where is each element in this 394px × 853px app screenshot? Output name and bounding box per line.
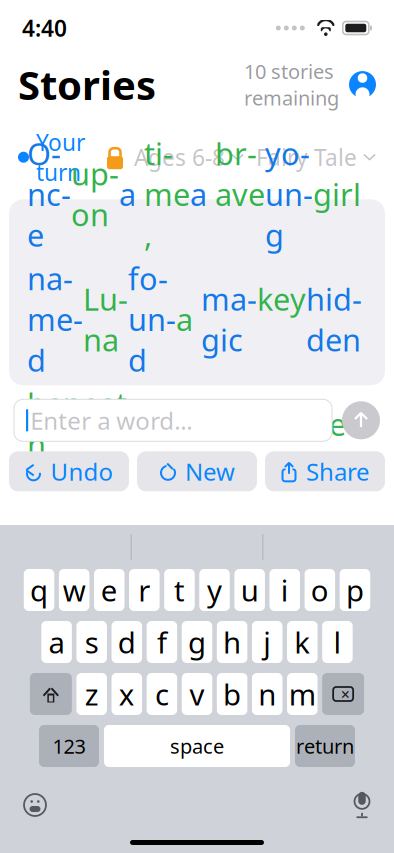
staticText: j [263, 622, 271, 661]
button[interactable]: q [24, 569, 54, 611]
staticText: p [346, 570, 364, 609]
button[interactable]: k [287, 621, 318, 663]
button[interactable]: a [41, 621, 72, 663]
staticText: r [138, 570, 150, 609]
staticText: a [190, 174, 215, 214]
button[interactable]: o [305, 569, 335, 611]
button[interactable]: w [59, 569, 89, 611]
button[interactable]: c [147, 673, 177, 715]
staticText: f [157, 622, 167, 661]
staticText: z [85, 674, 99, 713]
button[interactable]: l [322, 621, 353, 663]
staticText: girl [313, 174, 361, 214]
button[interactable]: Dictate [344, 783, 380, 827]
button[interactable]: Fairy Tale [256, 142, 376, 172]
staticText: g [188, 622, 206, 661]
staticText: i [281, 570, 289, 609]
staticText: d [118, 622, 136, 661]
button[interactable]: f [147, 621, 177, 663]
staticText: brave [215, 133, 265, 255]
button[interactable]: Ages 6-8 [134, 142, 244, 172]
staticText: the [137, 404, 192, 444]
staticText: Enter a word... [30, 404, 192, 436]
staticText: hidden [306, 278, 362, 360]
staticText: t [174, 570, 185, 609]
button[interactable]: Delete [322, 673, 364, 715]
staticText: space [170, 733, 224, 759]
staticText: oak [246, 404, 306, 444]
button[interactable]: m [287, 673, 318, 715]
staticText: tree [306, 404, 363, 444]
staticText: k [294, 622, 310, 661]
staticText: n [258, 674, 276, 713]
button[interactable]: x [112, 673, 142, 715]
staticText: Stories [18, 58, 156, 111]
staticText: Luna [83, 278, 128, 360]
staticText: Fairy Tale [256, 142, 357, 172]
staticText: magic [201, 278, 257, 360]
staticText: Your turn [36, 127, 85, 187]
staticText: key [257, 278, 306, 360]
staticText: time, [144, 133, 190, 255]
button[interactable]: New [137, 451, 257, 491]
button[interactable]: Shift [30, 673, 72, 715]
button[interactable]: return [295, 725, 355, 767]
button[interactable]: Send [342, 401, 380, 439]
button[interactable]: Account [349, 71, 376, 98]
staticText: y [207, 570, 222, 609]
staticText: × [341, 683, 350, 705]
staticText: a [49, 622, 65, 661]
button[interactable]: Undo [9, 451, 129, 491]
button[interactable]: i [269, 569, 300, 611]
button[interactable]: g [182, 621, 212, 663]
staticText: found [128, 258, 176, 380]
button[interactable]: t [164, 569, 195, 611]
staticText: m [289, 674, 316, 713]
staticText: a [176, 299, 201, 339]
staticText: v [189, 674, 204, 713]
staticText: named [27, 258, 83, 380]
staticText: 123 [52, 733, 85, 759]
staticText: q [30, 570, 48, 609]
staticText: s [85, 622, 99, 661]
button[interactable]: v [182, 673, 212, 715]
staticText: u [241, 570, 259, 609]
button[interactable]: space [104, 725, 290, 767]
staticText: c [155, 674, 169, 713]
button[interactable]: 123 [39, 725, 99, 767]
staticText: beneath [27, 383, 137, 465]
button[interactable]: b [217, 673, 247, 715]
button[interactable]: n [252, 673, 282, 715]
staticText: a [119, 174, 144, 214]
staticText: young [265, 133, 313, 255]
staticText: b [223, 674, 241, 713]
staticText: New [185, 455, 235, 487]
staticText: 4:40 [22, 13, 67, 43]
button[interactable]: h [217, 621, 247, 663]
button[interactable]: d [112, 621, 142, 663]
staticText: upon [71, 153, 119, 235]
button[interactable]: Share [265, 451, 385, 491]
button[interactable]: y [199, 569, 230, 611]
staticText: l [333, 622, 341, 661]
button[interactable]: Emoji [14, 784, 56, 826]
staticText: return [296, 733, 354, 759]
staticText: h [223, 622, 241, 661]
button[interactable]: z [76, 673, 107, 715]
button[interactable]: s [76, 621, 107, 663]
button[interactable]: e [94, 569, 124, 611]
staticText: old [192, 404, 246, 444]
staticText: Once [27, 133, 71, 255]
staticText: Undo [50, 455, 113, 487]
staticText: Share [306, 455, 370, 487]
staticText: e [101, 570, 118, 609]
staticText: 10 stories remaining [244, 58, 339, 111]
staticText: w [63, 570, 86, 609]
button[interactable]: r [129, 569, 160, 611]
staticText: o [311, 570, 329, 609]
staticText: x [119, 674, 135, 713]
button[interactable]: u [234, 569, 265, 611]
staticText: Ages 6-8 [134, 142, 225, 172]
button[interactable]: j [252, 621, 282, 663]
button[interactable]: p [340, 569, 370, 611]
